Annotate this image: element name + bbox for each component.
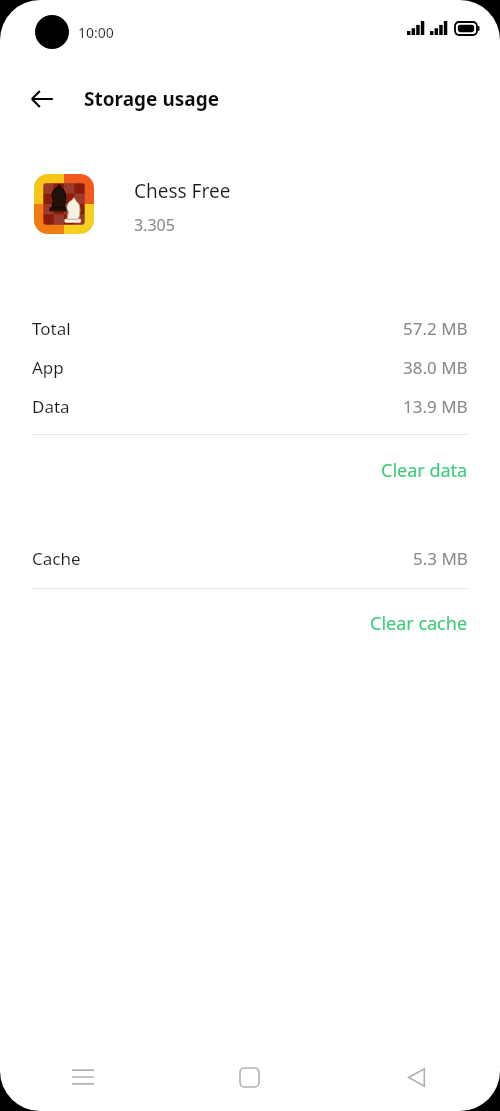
staticText: 3.305	[134, 214, 175, 236]
button[interactable]: Data	[0, 391, 500, 421]
staticText: 38.0 MB	[403, 356, 468, 379]
button[interactable]: Clear data	[0, 452, 500, 488]
staticText: Storage usage	[84, 86, 219, 112]
staticText: Total	[32, 317, 71, 340]
button[interactable]: Recents	[0, 1047, 166, 1111]
button[interactable]: Clear cache	[0, 605, 500, 641]
button[interactable]: Cache	[0, 543, 500, 573]
button[interactable]: Back	[333, 1047, 500, 1111]
staticText: 57.2 MB	[403, 317, 468, 340]
staticText: 5.3 MB	[413, 547, 468, 570]
button[interactable]: Back	[18, 75, 66, 123]
button[interactable]: Home	[166, 1047, 333, 1111]
staticText: App	[32, 356, 64, 379]
staticText: Clear cache	[370, 611, 468, 636]
button[interactable]: App	[0, 352, 500, 382]
staticText: 10:00	[78, 23, 114, 42]
staticText: Data	[32, 395, 70, 418]
staticText: 13.9 MB	[403, 395, 468, 418]
staticText: Cache	[32, 547, 81, 570]
button[interactable]: Total	[0, 313, 500, 343]
staticText: Clear data	[381, 458, 468, 483]
staticText: Chess Free	[134, 178, 231, 204]
